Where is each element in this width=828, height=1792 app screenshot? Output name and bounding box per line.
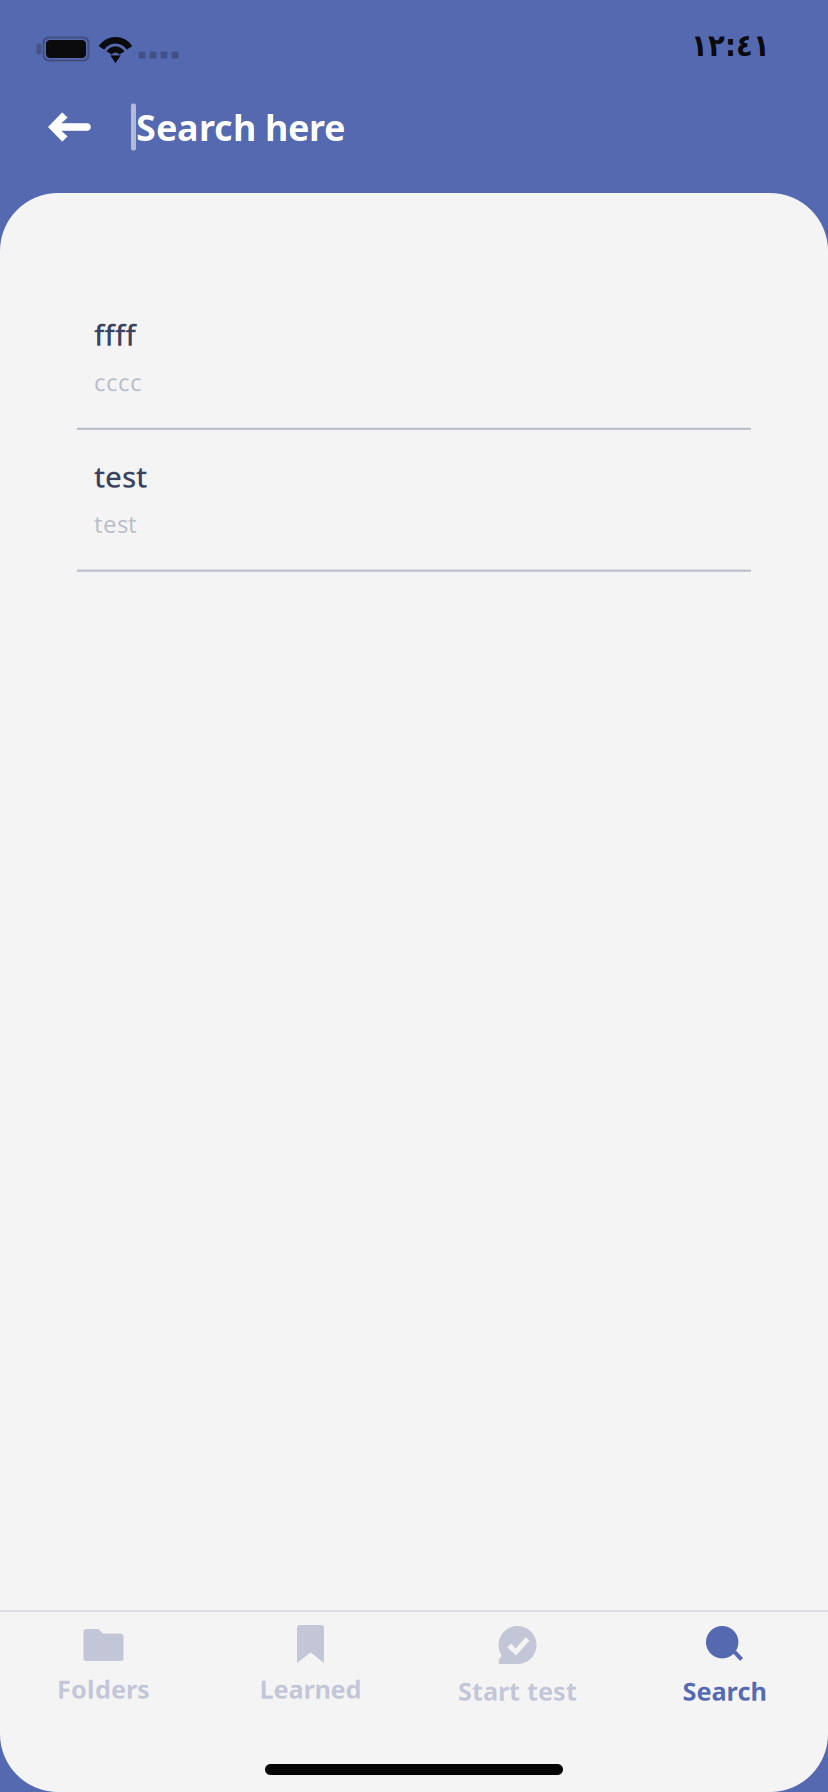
button[interactable]: Start test bbox=[414, 1612, 621, 1720]
button[interactable]: Folders bbox=[0, 1612, 207, 1720]
staticText: Folders bbox=[57, 1672, 150, 1706]
staticText: ١٢:٤١ bbox=[691, 28, 770, 63]
staticText: Search bbox=[682, 1674, 766, 1708]
button[interactable]: Learned bbox=[207, 1612, 414, 1720]
staticText: Search here bbox=[136, 103, 345, 151]
staticText: test bbox=[94, 457, 147, 496]
staticText: cccc bbox=[94, 366, 142, 398]
button[interactable]: Back bbox=[28, 89, 110, 165]
staticText: ffff bbox=[94, 315, 136, 354]
button[interactable]: test bbox=[77, 430, 751, 572]
button[interactable]: ffff bbox=[77, 288, 751, 430]
staticText: test bbox=[94, 508, 137, 540]
staticText: Start test bbox=[458, 1674, 577, 1708]
button[interactable]: Search bbox=[621, 1612, 828, 1720]
staticText: Learned bbox=[259, 1672, 361, 1706]
